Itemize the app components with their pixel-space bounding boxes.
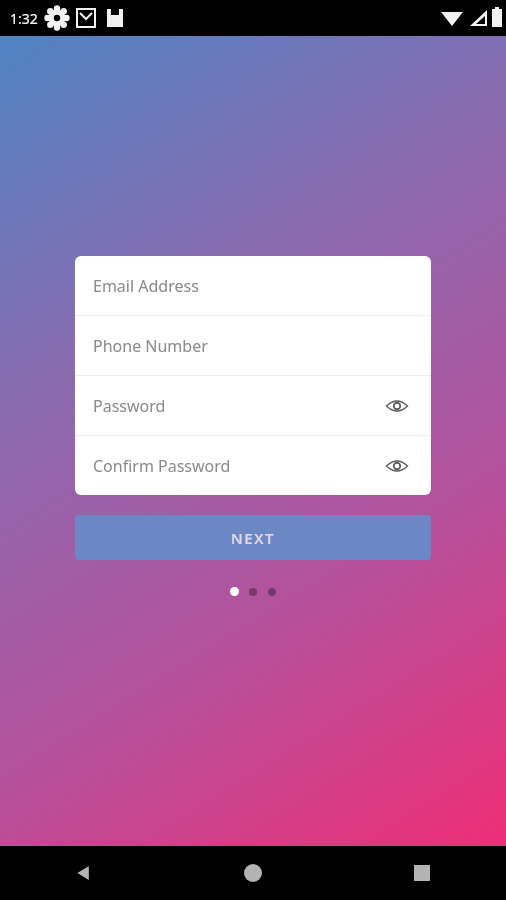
button[interactable]: Page 1 <box>230 587 239 596</box>
button[interactable]: Recents <box>337 846 506 900</box>
button[interactable]: Email Address <box>75 256 431 315</box>
button[interactable]: Show password <box>379 388 415 424</box>
button[interactable]: Back <box>0 846 168 900</box>
button[interactable]: Page 2 <box>249 588 257 596</box>
staticText: 1:32 <box>10 9 38 28</box>
staticText: Email Address <box>93 275 415 297</box>
button[interactable]: Home <box>168 846 337 900</box>
button[interactable]: Phone Number <box>75 316 431 375</box>
staticText: Confirm Password <box>93 455 379 477</box>
button[interactable]: Page 3 <box>268 588 276 596</box>
button[interactable]: Confirm Password <box>75 436 431 495</box>
button[interactable]: NEXT <box>75 515 431 560</box>
button[interactable]: Show password <box>379 448 415 484</box>
button[interactable]: Password <box>75 376 431 435</box>
staticText: Phone Number <box>93 335 415 357</box>
staticText: Password <box>93 395 379 417</box>
staticText: NEXT <box>231 528 275 548</box>
